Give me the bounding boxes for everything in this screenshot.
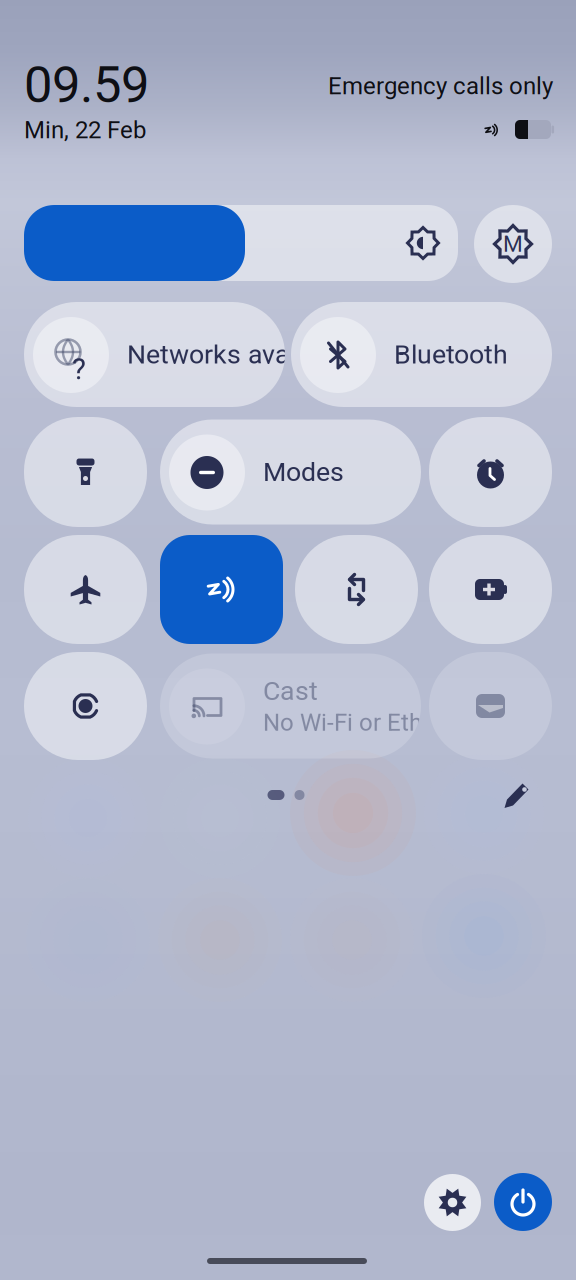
button[interactable]: Quick setting <box>295 535 418 644</box>
button[interactable]: Bluetooth <box>291 302 552 407</box>
button[interactable]: Quick setting <box>429 417 552 527</box>
staticText: ? <box>72 352 86 386</box>
button[interactable]: Quick setting <box>24 652 147 760</box>
staticText: Emergency calls only <box>328 72 553 100</box>
button[interactable]: Settings <box>424 1174 481 1231</box>
staticText: 09.59 <box>24 55 149 115</box>
button[interactable]: Power <box>494 1173 552 1231</box>
button[interactable]: Modes wheel <box>474 205 552 283</box>
button[interactable]: Quick setting <box>160 535 283 644</box>
button[interactable]: Cast <box>160 653 421 758</box>
button[interactable]: Brightness <box>24 205 458 281</box>
staticText: Bluetooth <box>394 339 508 370</box>
button[interactable]: Modes <box>160 419 421 524</box>
staticText: Min, 22 Feb <box>24 116 146 144</box>
button[interactable]: ? <box>24 302 285 407</box>
button[interactable]: Edit tiles <box>496 774 538 816</box>
staticText: Networks available <box>127 339 352 370</box>
button[interactable]: Quick setting <box>24 535 147 644</box>
staticText: Cast <box>263 675 318 707</box>
staticText: Modes <box>263 456 344 488</box>
button[interactable]: Quick setting <box>429 652 552 760</box>
button[interactable]: Quick setting <box>429 535 552 644</box>
staticText: No Wi-Fi or Ethernet <box>263 709 477 737</box>
button[interactable]: Quick setting <box>24 417 147 527</box>
staticText: M <box>503 231 523 257</box>
